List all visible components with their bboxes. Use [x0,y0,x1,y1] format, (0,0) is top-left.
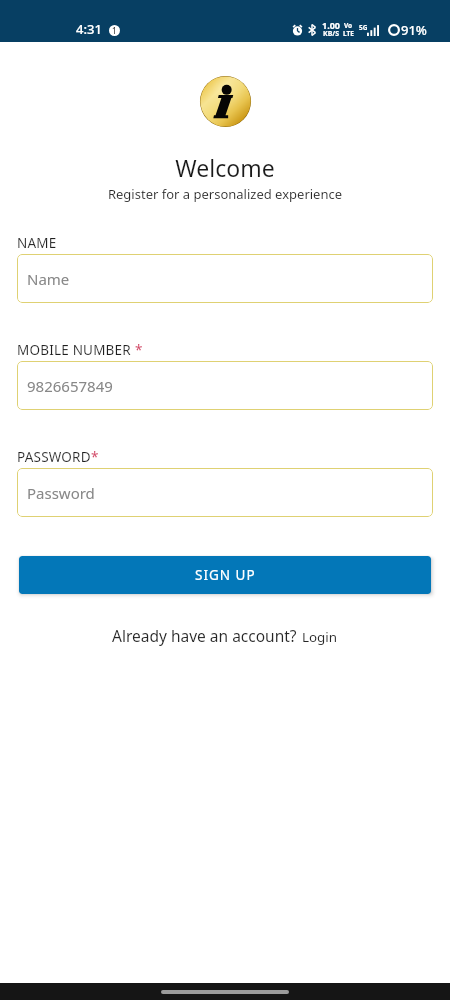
staticText: MOBILE NUMBER [17,341,135,359]
staticText: PASSWORD [17,448,91,466]
staticText: * [135,341,143,359]
staticText: Password [27,483,95,503]
other: Bluetooth [308,24,316,36]
staticText: 91% [401,21,427,39]
staticText: LTE [343,29,354,38]
staticText: Login [302,628,338,646]
staticText: Already have an account? [112,625,301,646]
button[interactable]: Name [17,254,433,303]
staticText: 1 [112,25,117,36]
other: Alarm [292,24,303,36]
other: Signal strength [367,25,379,36]
staticText: 1.00 [322,19,340,31]
button[interactable]: Password [17,468,433,517]
staticText: Register for a personalized experience [0,185,450,203]
staticText: KB/S [323,29,340,39]
other: Battery [388,24,400,36]
button[interactable]: Login [301,628,339,646]
staticText: 9826657849 [27,376,113,396]
staticText: Name [27,269,70,289]
other: App logo [200,76,251,127]
staticText: 4:31 [76,20,102,38]
staticText: Vo [344,21,353,30]
staticText: * [91,448,99,466]
staticText: NAME [17,234,57,252]
staticText: Welcome [0,152,450,183]
button[interactable]: SIGN UP [19,556,431,594]
button[interactable]: 9826657849 [17,361,433,410]
staticText: SIGN UP [195,566,256,584]
staticText: 5G [359,23,368,32]
